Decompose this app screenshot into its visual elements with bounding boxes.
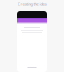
staticText: Creating the idea (17, 1, 46, 7)
